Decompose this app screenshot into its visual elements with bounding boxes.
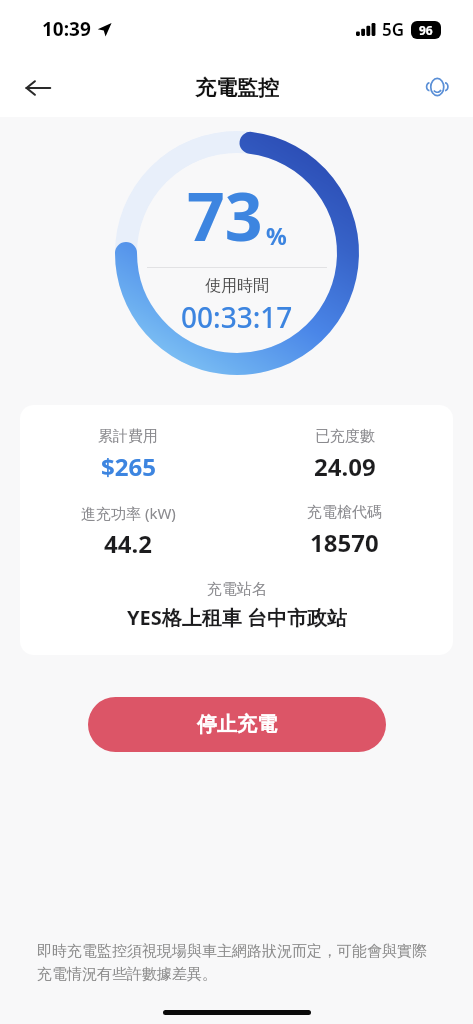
staticText: 96 [419,22,433,38]
staticText: % [266,220,287,251]
button[interactable]: 累計費用 [20,405,453,655]
staticText: 10:39 [42,16,91,42]
staticText: 18570 [310,526,379,559]
staticText: 5G [382,18,405,41]
staticText: 24.09 [314,450,376,483]
staticText: 進充功率 (kW) [81,503,176,523]
staticText: 累計費用 [98,427,158,446]
button[interactable]: Customer support [413,64,461,112]
staticText: 充電監控 [195,75,279,101]
staticText: 充電站名 [207,580,267,599]
button[interactable]: Back [14,64,62,112]
button[interactable]: 停止充電 [88,697,386,752]
staticText: YES格上租車 台中市政站 [127,604,347,631]
staticText: 73 [187,170,263,260]
staticText: $265 [101,450,156,483]
staticText: 已充度數 [315,427,375,446]
staticText: 即時充電監控須視現場與車主網路狀況而定，可能會與實際充電情況有些許數據差異。 [37,942,439,984]
staticText: 充電槍代碼 [307,503,382,522]
staticText: 44.2 [104,527,152,560]
staticText: 00:33:17 [181,298,293,336]
staticText: 使用時間 [205,276,269,296]
staticText: 停止充電 [197,712,277,737]
